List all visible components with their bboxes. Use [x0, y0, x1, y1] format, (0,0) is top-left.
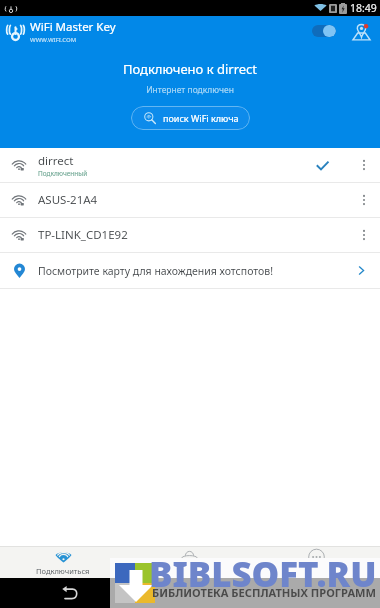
- staticText: поиск WiFi ключа: [163, 112, 239, 124]
- staticText: WiFi Master Key: [30, 19, 116, 35]
- button[interactable]: подробнее: [253, 547, 380, 576]
- button[interactable]: ASUS-21A4: [0, 183, 380, 217]
- staticText: радар: [178, 566, 201, 576]
- button[interactable]: Map: [348, 18, 374, 44]
- button[interactable]: поиск WiFi ключа: [131, 106, 250, 130]
- staticText: Подключено к dirrect: [0, 60, 380, 78]
- button[interactable]: Подключиться: [0, 547, 126, 576]
- button[interactable]: Посмотрите карту для нахождения хотспото…: [0, 253, 380, 288]
- staticText: БИБЛИОТЕКА БЕСПЛАТНЫХ ПРОГРАММ: [152, 585, 377, 600]
- button[interactable]: dirrect: [0, 148, 380, 182]
- staticText: BIBLSOFT.RU: [149, 550, 377, 597]
- staticText: Интернет подключен: [0, 84, 380, 96]
- staticText: Подключенный: [38, 169, 88, 178]
- staticText: ASUS-21A4: [38, 192, 98, 208]
- button[interactable]: TP-LINK_CD1E92: [0, 218, 380, 252]
- staticText: dirrect: [38, 153, 74, 169]
- staticText: Подключиться: [36, 566, 90, 576]
- staticText: WWW.WIFI.COM: [30, 36, 77, 44]
- staticText: Посмотрите карту для нахождения хотспото…: [38, 264, 355, 278]
- button[interactable]: WiFi toggle: [304, 19, 344, 43]
- button[interactable]: Back: [54, 578, 84, 608]
- button[interactable]: More options: [352, 148, 376, 182]
- button[interactable]: More options: [352, 218, 376, 252]
- staticText: TP-LINK_CD1E92: [38, 227, 128, 243]
- staticText: подробнее: [297, 566, 337, 576]
- button[interactable]: радар: [126, 547, 253, 576]
- staticText: 18:49: [350, 1, 377, 15]
- button[interactable]: More options: [352, 183, 376, 217]
